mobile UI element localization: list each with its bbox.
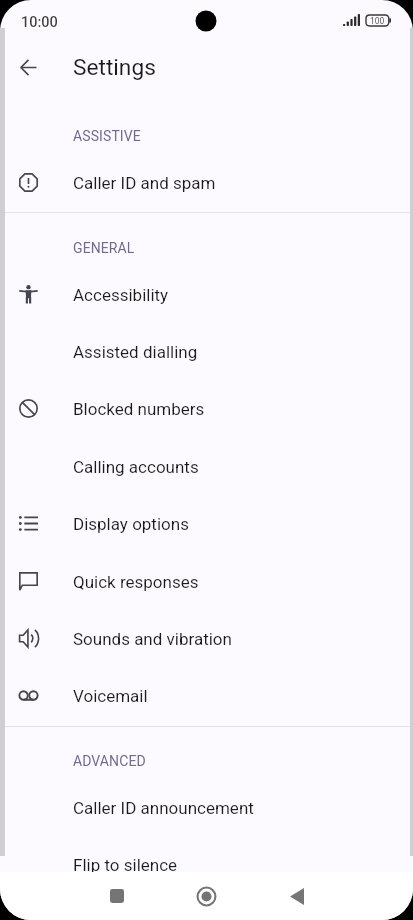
staticText: Voicemail: [73, 686, 148, 706]
staticText: Caller ID and spam: [73, 173, 216, 193]
button[interactable]: Sounds and vibration: [0, 610, 413, 667]
staticText: Sounds and vibration: [73, 629, 232, 649]
staticText: Blocked numbers: [73, 399, 205, 419]
staticText: GENERAL: [73, 240, 135, 256]
staticText: Caller ID announcement: [73, 798, 254, 818]
button[interactable]: Display options: [0, 495, 413, 552]
button[interactable]: Quick responses: [0, 553, 413, 610]
staticText: 10:00: [21, 14, 58, 31]
staticText: Assisted dialling: [73, 342, 198, 362]
staticText: Accessibility: [73, 285, 169, 305]
button[interactable]: Back: [282, 881, 312, 911]
button[interactable]: Caller ID announcement: [0, 779, 413, 836]
button[interactable]: Blocked numbers: [0, 380, 413, 437]
button[interactable]: Flip to silence: [0, 836, 413, 893]
staticText: Display options: [73, 514, 189, 534]
button[interactable]: Back: [11, 50, 46, 85]
button[interactable]: Calling accounts: [0, 438, 413, 495]
button[interactable]: Voicemail: [0, 667, 413, 724]
staticText: Quick responses: [73, 572, 199, 592]
button[interactable]: Home: [191, 881, 221, 911]
staticText: 100: [370, 16, 385, 26]
staticText: Flip to silence: [73, 855, 178, 875]
button[interactable]: Accessibility: [0, 266, 413, 323]
button[interactable]: Caller ID and spam: [0, 154, 413, 211]
staticText: Settings: [73, 54, 156, 81]
staticText: Calling accounts: [73, 457, 199, 477]
staticText: ADVANCED: [73, 753, 146, 769]
staticText: ASSISTIVE: [73, 128, 141, 144]
button[interactable]: Assisted dialling: [0, 323, 413, 380]
button[interactable]: Recent apps: [102, 881, 132, 911]
